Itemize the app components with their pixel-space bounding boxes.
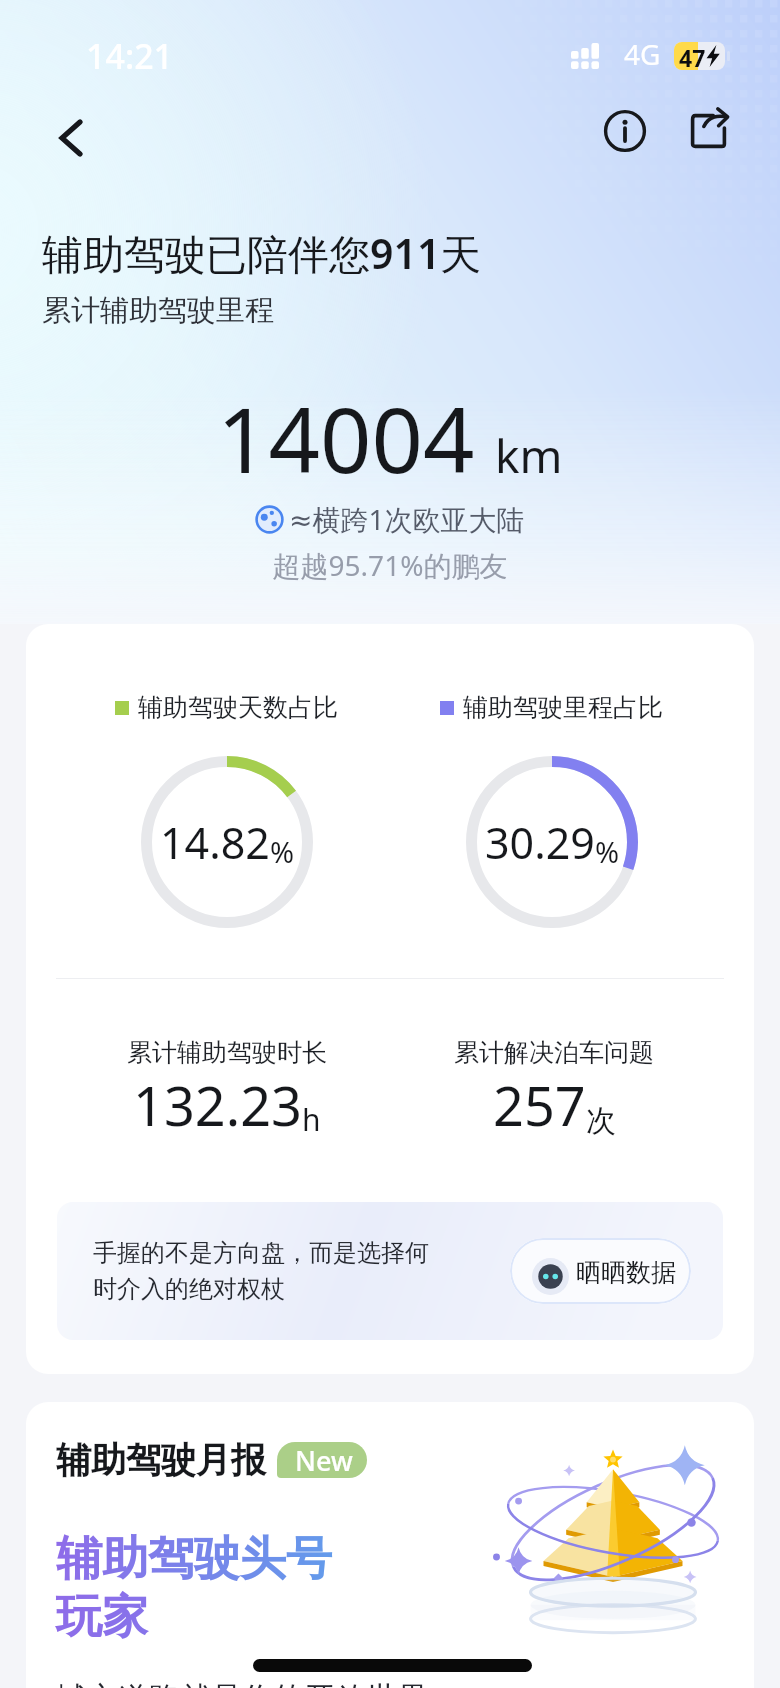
staticText: 30.29 bbox=[485, 813, 595, 872]
staticText: 累计解决泊车问题 bbox=[454, 1037, 654, 1068]
staticText: 手握的不是方向盘，而是选择何 时介入的绝对权杖 bbox=[93, 1238, 429, 1304]
staticText: 晒晒数据 bbox=[576, 1257, 676, 1288]
button[interactable]: 辅助驾驶月报 bbox=[26, 1402, 754, 1688]
staticText: New bbox=[295, 1442, 353, 1478]
button[interactable]: Information bbox=[596, 102, 654, 160]
staticText: ≈横跨1次欧亚大陆 bbox=[289, 500, 525, 538]
button[interactable]: Back bbox=[35, 111, 107, 165]
staticText: 超越95.71%的鹏友 bbox=[0, 546, 780, 584]
staticText: 14:21 bbox=[86, 33, 174, 79]
staticText: 132.23 bbox=[133, 1068, 302, 1142]
staticText: 14.82 bbox=[160, 813, 270, 872]
staticText: 辅助驾驶月报 bbox=[56, 1438, 266, 1482]
staticText: 辅助驾驶天数占比 bbox=[138, 692, 338, 723]
staticText: 辅助驾驶头号 bbox=[56, 1530, 332, 1588]
staticText: 4G bbox=[624, 35, 661, 73]
staticText: 257 bbox=[493, 1068, 586, 1142]
staticText: km bbox=[495, 424, 563, 487]
staticText: % bbox=[270, 832, 295, 871]
staticText: 累计辅助驾驶时长 bbox=[127, 1037, 327, 1068]
staticText: 辅助驾驶已陪伴您911天 bbox=[42, 225, 482, 281]
staticText: 14004 bbox=[217, 377, 475, 500]
staticText: 次 bbox=[586, 1102, 616, 1140]
button[interactable]: Share bbox=[679, 102, 737, 160]
staticText: % bbox=[595, 832, 620, 871]
staticText: h bbox=[302, 1099, 321, 1140]
button[interactable]: 晒晒数据 bbox=[510, 1238, 691, 1304]
staticText: 城市道路就是你的开放世界 bbox=[56, 1679, 428, 1688]
staticText: 累计辅助驾驶里程 bbox=[42, 292, 274, 329]
staticText: 玩家 bbox=[56, 1588, 148, 1646]
staticText: 47 bbox=[679, 42, 706, 70]
staticText: 辅助驾驶里程占比 bbox=[463, 692, 663, 723]
